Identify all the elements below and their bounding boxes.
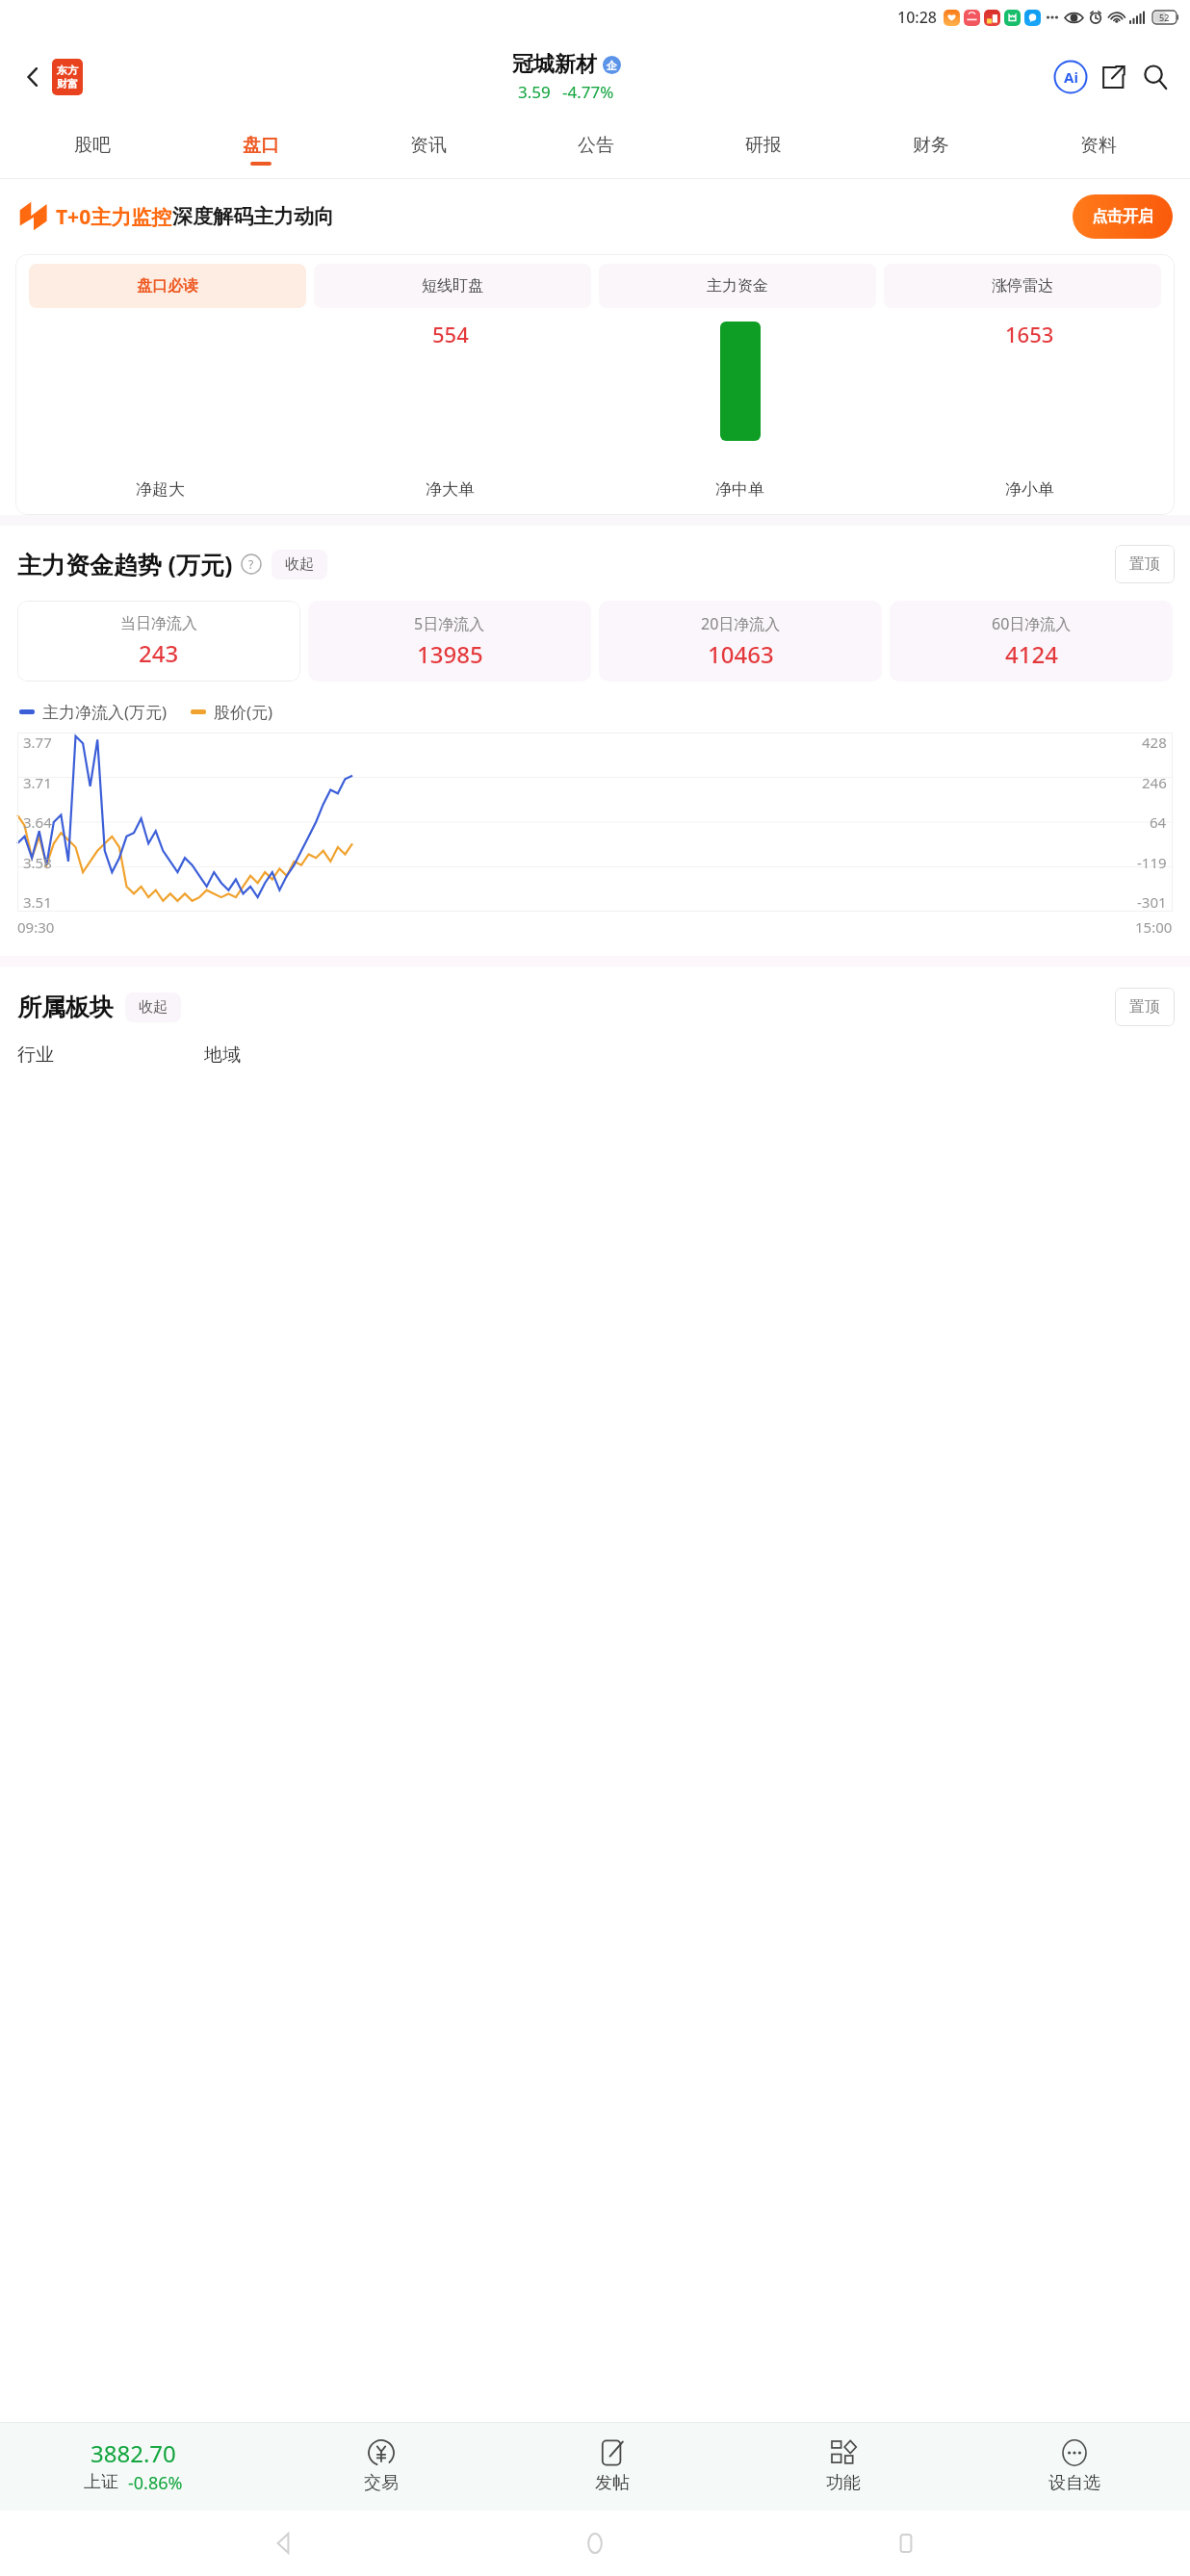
staticText: 3.58 — [23, 853, 52, 872]
staticText: 净超大 — [136, 479, 185, 500]
button[interactable]: Home — [568, 2516, 622, 2570]
staticText: 所属板块 — [17, 992, 114, 1022]
staticText: 置顶 — [1129, 997, 1160, 1017]
staticText: 3.59 — [518, 81, 551, 103]
staticText: 设自选 — [1048, 2472, 1100, 2494]
staticText: 10463 — [708, 638, 774, 670]
button[interactable]: 资料 — [1015, 119, 1182, 179]
staticText: 财富 — [57, 77, 78, 90]
staticText: 3.51 — [23, 892, 52, 912]
staticText: 60日净流入 — [992, 613, 1072, 634]
button[interactable]: 公告 — [512, 119, 680, 179]
staticText: 4124 — [1005, 638, 1058, 670]
staticText: 当日净流入 — [120, 614, 197, 633]
staticText: 246 — [1142, 773, 1167, 792]
button[interactable]: 置顶 — [1115, 545, 1175, 583]
button[interactable]: 财务 — [847, 119, 1015, 179]
button[interactable]: 主力资金 — [599, 264, 876, 308]
staticText: 东方 — [57, 64, 78, 77]
staticText: 企 — [607, 59, 617, 72]
button[interactable]: Help — [241, 554, 262, 575]
button[interactable]: 5日净流入 — [308, 601, 591, 682]
staticText: 资料 — [1080, 134, 1117, 157]
staticText: Ai — [1064, 67, 1078, 87]
button[interactable]: Search — [1134, 56, 1177, 98]
staticText: 554 — [432, 320, 469, 348]
button[interactable]: AI — [1049, 56, 1092, 98]
staticText: 盘口 — [243, 134, 279, 157]
button[interactable]: 东方财富 — [52, 59, 83, 95]
button[interactable]: 3882.70 — [0, 2422, 266, 2511]
staticText: ? — [248, 556, 254, 572]
staticText: 1653 — [1005, 320, 1054, 348]
staticText: 15:00 — [1135, 917, 1173, 937]
staticText: 64 — [1150, 812, 1167, 832]
button[interactable]: 发帖 — [497, 2422, 728, 2511]
staticText: 短线盯盘 — [422, 276, 483, 296]
button[interactable]: 收起 — [125, 992, 181, 1022]
staticText: 09:30 — [17, 917, 55, 937]
staticText: 盘口必读 — [137, 276, 198, 296]
staticText: 研报 — [745, 134, 782, 157]
staticText: 地域 — [204, 1043, 241, 1067]
staticText: 收起 — [139, 998, 168, 1017]
button[interactable]: 盘口必读 — [29, 264, 306, 308]
button[interactable]: Share — [1092, 56, 1134, 98]
staticText: 收起 — [285, 555, 314, 574]
button[interactable]: T+0主力监控 — [0, 179, 1190, 254]
button[interactable]: 涨停雷达 — [884, 264, 1161, 308]
button[interactable]: 当日净流入 — [17, 601, 300, 682]
staticText: 功能 — [826, 2472, 861, 2494]
staticText: T+0主力监控 — [56, 203, 172, 231]
button[interactable]: Back — [13, 58, 52, 96]
button[interactable]: Recents — [879, 2516, 933, 2570]
staticText: 置顶 — [1129, 554, 1160, 574]
staticText: 243 — [139, 637, 179, 669]
staticText: 20日净流入 — [701, 613, 781, 634]
staticText: 5日净流入 — [414, 613, 485, 634]
staticText: 主力净流入(万元) — [42, 701, 168, 723]
button[interactable]: Back — [257, 2516, 311, 2570]
staticText: 3.77 — [23, 733, 52, 752]
staticText: 428 — [1142, 733, 1167, 752]
staticText: 净中单 — [715, 479, 764, 500]
staticText: 行业 — [17, 1043, 54, 1067]
staticText: 股价(元) — [214, 701, 273, 723]
staticText: 公告 — [578, 134, 614, 157]
staticText: 主力资金趋势 (万元) — [17, 548, 233, 580]
staticText: 深度解码主力动向 — [172, 204, 334, 229]
button[interactable]: 点击开启 — [1073, 194, 1173, 239]
button[interactable]: 置顶 — [1115, 988, 1175, 1026]
staticText: 净大单 — [426, 479, 475, 500]
staticText: 财务 — [913, 134, 949, 157]
button[interactable]: 收起 — [272, 550, 327, 580]
staticText: 点击开启 — [1092, 207, 1153, 226]
button[interactable]: 60日净流入 — [890, 601, 1173, 682]
button[interactable]: 短线盯盘 — [314, 264, 591, 308]
staticText: -4.77% — [562, 81, 614, 103]
staticText: 交易 — [364, 2472, 399, 2494]
staticText: 主力资金 — [707, 276, 768, 296]
button[interactable]: 盘口 — [176, 119, 345, 179]
button[interactable]: 设自选 — [959, 2422, 1190, 2511]
staticText: 3882.70 — [91, 2437, 176, 2469]
staticText: 3.71 — [23, 773, 52, 792]
staticText: 发帖 — [595, 2472, 630, 2494]
button[interactable]: 研报 — [680, 119, 847, 179]
staticText: 上证 — [84, 2471, 118, 2493]
button[interactable]: 功能 — [728, 2422, 959, 2511]
button[interactable]: 20日净流入 — [599, 601, 882, 682]
staticText: 净小单 — [1005, 479, 1054, 500]
staticText: 冠城新材 — [512, 51, 597, 78]
button[interactable]: 资讯 — [345, 119, 512, 179]
staticText: 股吧 — [74, 134, 111, 157]
staticText: 10:28 — [897, 7, 937, 28]
staticText: -119 — [1137, 853, 1167, 872]
button[interactable]: 股吧 — [8, 119, 176, 179]
staticText: 资讯 — [410, 134, 447, 157]
staticText: 52 — [1159, 12, 1170, 23]
staticText: -301 — [1137, 892, 1167, 912]
button[interactable]: 交易 — [266, 2422, 497, 2511]
staticText: 13985 — [417, 638, 483, 670]
staticText: 3.64 — [23, 812, 52, 832]
